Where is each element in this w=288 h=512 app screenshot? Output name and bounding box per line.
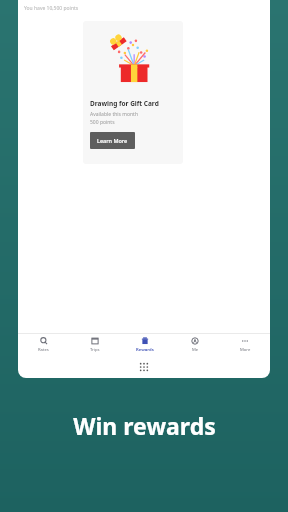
staticText: 500 points [90,119,115,126]
staticText: Win rewards [73,410,216,441]
button[interactable]: More [220,334,270,356]
staticText: Available this month [90,111,138,118]
button[interactable]: Me [170,334,220,356]
staticText: Rewards [136,347,154,353]
button[interactable]: Rates [18,334,69,356]
staticText: Drawing for Gift Card [90,99,159,108]
button[interactable]: Learn More [90,132,135,149]
staticText: Learn More [97,137,128,144]
button[interactable]: All apps [136,359,152,375]
button[interactable]: Rewards [120,334,170,356]
button[interactable]: Trips [69,334,120,356]
staticText: Me [192,347,199,353]
button[interactable]: Drawing for Gift Card [83,21,183,164]
staticText: Trips [90,347,100,353]
staticText: More [240,347,251,353]
staticText: You have 10,500 points [24,5,79,12]
staticText: Rates [38,347,49,353]
